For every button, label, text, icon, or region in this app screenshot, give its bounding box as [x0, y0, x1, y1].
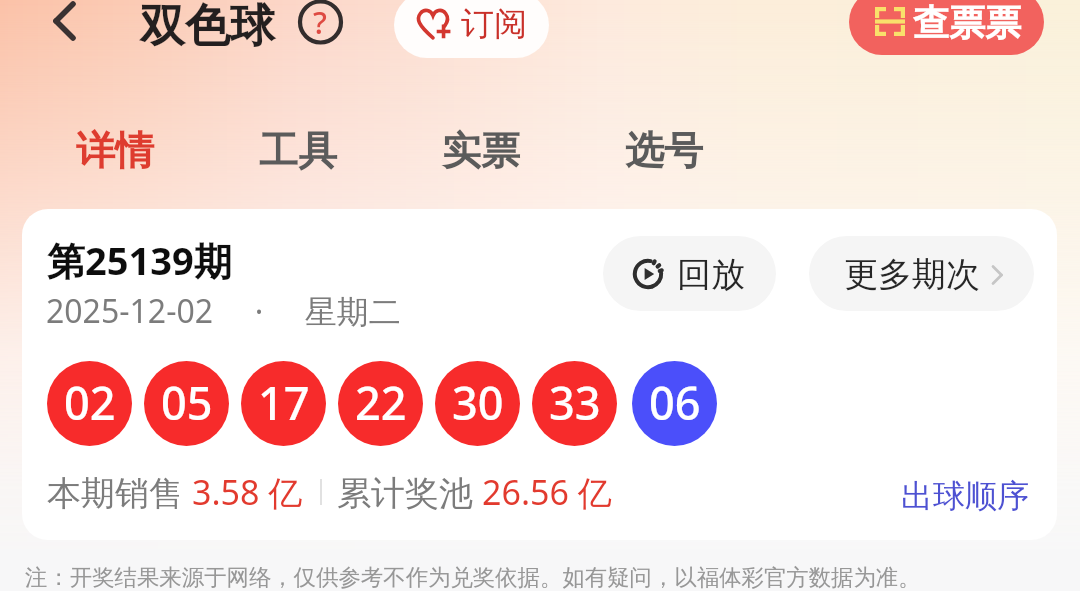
button[interactable]: 工具 [234, 115, 362, 187]
staticText: 第25139期 [47, 234, 232, 286]
button[interactable]: 更多期次 [809, 236, 1034, 311]
button[interactable]: 订阅 [394, 0, 549, 58]
staticText: 工具 [259, 126, 337, 175]
staticText: 实票 [442, 126, 520, 175]
staticText: 选号 [625, 126, 703, 175]
button[interactable]: Back [36, 0, 92, 56]
staticText: 26.56 亿 [482, 469, 612, 515]
staticText: 30 [452, 372, 504, 433]
staticText: 06 [649, 372, 701, 433]
staticText: 02 [64, 372, 116, 433]
button[interactable]: 实票 [417, 115, 545, 187]
staticText: 33 [549, 372, 601, 433]
staticText: 详情 [76, 126, 154, 175]
staticText: 22 [355, 372, 407, 433]
staticText: 出球顺序 [901, 476, 1029, 516]
staticText: 双色球 [140, 0, 275, 55]
button[interactable]: 回放 [603, 236, 776, 311]
button[interactable]: Help [298, 0, 346, 48]
staticText: 注：开奖结果来源于网络，仅供参考不作为兑奖依据。如有疑问，以福体彩官方数据为准。 [25, 563, 921, 591]
staticText: 更多期次 [844, 253, 980, 296]
staticText: 05 [161, 372, 213, 433]
staticText: 3.58 亿 [192, 469, 303, 515]
staticText: 本期销售 [47, 469, 192, 515]
staticText: 2025-12-02 · 星期二 [46, 289, 401, 333]
button[interactable]: 选号 [600, 115, 728, 187]
staticText: 回放 [677, 253, 745, 296]
staticText: 17 [258, 372, 310, 433]
button[interactable]: 详情 [51, 115, 179, 187]
staticText: 订阅 [461, 3, 527, 45]
staticText: ? [313, 1, 327, 43]
button[interactable]: 出球顺序 [901, 476, 1029, 516]
staticText: 查票票 [913, 0, 1021, 45]
staticText: 累计奖池 [337, 469, 482, 515]
button[interactable]: 查票票 [849, 0, 1044, 55]
